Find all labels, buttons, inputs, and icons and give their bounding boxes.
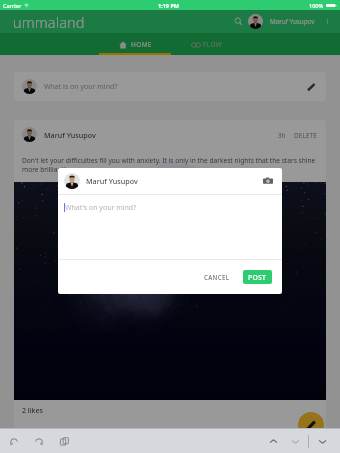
button[interactable]: Undo (6, 433, 22, 449)
staticText: POST (248, 273, 267, 282)
button[interactable]: Next field (287, 433, 303, 449)
button[interactable]: Maruf Yusupov (248, 14, 315, 29)
staticText: 3h (278, 131, 286, 139)
button[interactable]: POST (243, 270, 272, 284)
staticText: 2 likes (22, 406, 43, 416)
button[interactable]: Redo (31, 433, 47, 449)
button[interactable]: CANCEL (198, 269, 236, 285)
staticText: ummaland (13, 12, 85, 32)
staticText: What's on your mind? (65, 203, 137, 213)
staticText: Carrier (3, 2, 22, 9)
staticText: 100% (309, 2, 324, 9)
staticText: FLOW (203, 40, 223, 49)
button[interactable]: What is on your mind? (14, 72, 326, 101)
button[interactable]: More options (321, 15, 334, 28)
staticText: Maruf Yusupov (44, 130, 96, 140)
button[interactable]: Add photo (261, 174, 275, 188)
button[interactable]: Previous field (265, 433, 281, 449)
staticText: Maruf Yusupov (270, 17, 315, 26)
button[interactable]: Paste (56, 433, 72, 449)
staticText: DELETE (294, 131, 318, 139)
staticText: HOME (131, 40, 152, 49)
staticText: What is on your mind? (44, 82, 118, 92)
button[interactable]: Hide keyboard (314, 433, 330, 449)
staticText: 1:19 PM (158, 2, 180, 9)
staticText: Maruf Yusupov (86, 176, 138, 186)
button[interactable]: Search (231, 14, 246, 29)
button[interactable]: Create post (298, 412, 324, 438)
staticText: CANCEL (204, 273, 230, 281)
staticText: Don't let your difficulties fill you wit… (22, 156, 323, 174)
button[interactable]: FLOW (171, 33, 243, 55)
button[interactable]: HOME (99, 33, 171, 55)
